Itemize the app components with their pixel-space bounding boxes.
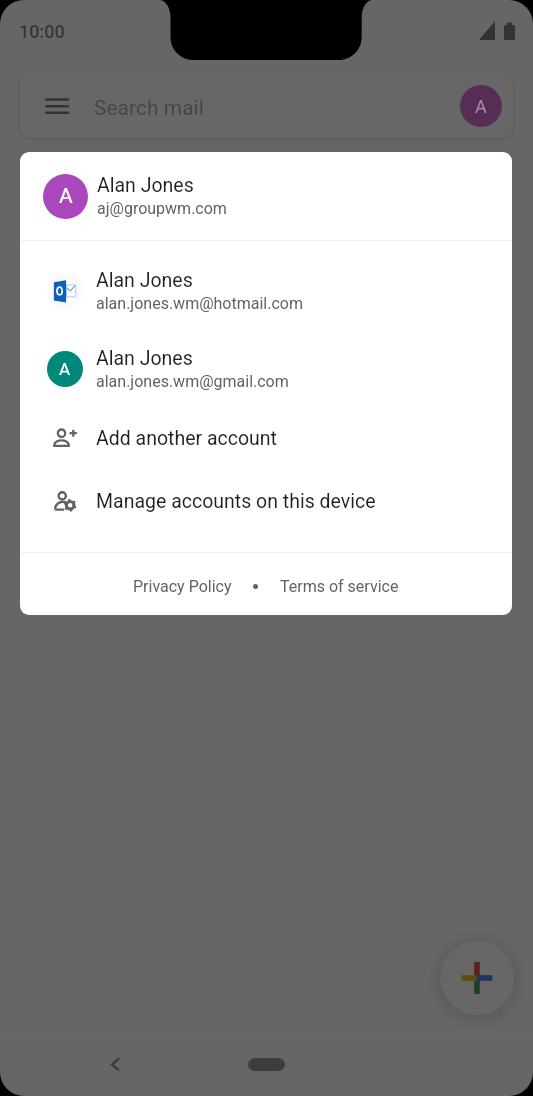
staticText: Alan Jones [96, 269, 193, 292]
staticText: A [475, 96, 487, 117]
button[interactable]: Privacy Policy [133, 577, 232, 596]
button[interactable]: Terms of service [280, 577, 399, 596]
button[interactable]: Compose [440, 941, 514, 1015]
staticText: Manage accounts on this device [96, 490, 376, 513]
button[interactable]: Home [248, 1058, 285, 1071]
button[interactable]: Open navigation drawer [20, 73, 513, 138]
staticText: Alan Jones [97, 174, 194, 197]
staticText: alan.jones.wm@gmail.com [96, 372, 289, 391]
button[interactable]: Back [96, 1049, 128, 1080]
button[interactable]: A [20, 152, 512, 240]
button[interactable]: Alan Jones [20, 252, 512, 330]
staticText: 10:00 [19, 21, 65, 42]
staticText: Add another account [96, 427, 277, 450]
staticText: Alan Jones [96, 347, 193, 370]
button[interactable]: Add another account [20, 407, 512, 469]
staticText: aj@groupwm.com [97, 199, 227, 218]
staticText: A [59, 359, 71, 379]
button[interactable]: Open navigation drawer [37, 88, 77, 128]
button[interactable]: A [20, 330, 512, 408]
staticText: alan.jones.wm@hotmail.com [96, 294, 303, 313]
staticText: A [59, 184, 73, 209]
button[interactable]: Manage accounts on this device [20, 470, 512, 532]
button[interactable]: Account [460, 85, 502, 127]
staticText: Search mail [94, 96, 204, 121]
